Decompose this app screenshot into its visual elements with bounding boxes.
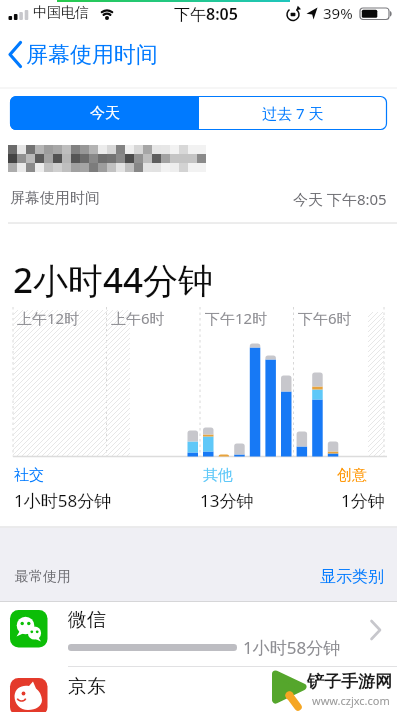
staticText: 中国电信 bbox=[33, 4, 89, 22]
staticText: 今天 下午8:05 bbox=[293, 189, 387, 209]
staticText: 今天 bbox=[90, 104, 120, 123]
staticText: 1小时58分钟 bbox=[243, 636, 341, 659]
staticText: 13分钟 bbox=[200, 489, 254, 512]
staticText: 下午12时 bbox=[205, 308, 268, 328]
staticText: 京东 bbox=[68, 675, 106, 699]
staticText: 下午8:05 bbox=[174, 3, 238, 25]
button[interactable] bbox=[0, 602, 397, 666]
staticText: 上午6时 bbox=[111, 308, 165, 328]
staticText: 过去 7 天 bbox=[262, 103, 324, 123]
staticText: 1小时58分钟 bbox=[14, 489, 112, 512]
staticText: 下午6时 bbox=[298, 308, 352, 328]
staticText: 微信 bbox=[68, 608, 106, 632]
staticText: 1分钟 bbox=[341, 489, 385, 512]
staticText: 创意 bbox=[337, 466, 367, 485]
button[interactable]: 过去 7 天 bbox=[198, 96, 387, 130]
staticText: 2小时44分钟 bbox=[13, 256, 214, 304]
staticText: 上午12时 bbox=[17, 308, 80, 328]
button[interactable]: 今天 bbox=[10, 96, 199, 130]
staticText: 社交 bbox=[14, 466, 44, 485]
staticText: 屏幕使用时间 bbox=[10, 189, 100, 208]
staticText: 39% bbox=[323, 3, 353, 23]
staticText: 最常使用 bbox=[15, 568, 71, 586]
button[interactable] bbox=[8, 36, 178, 76]
button[interactable]: 显示类别 bbox=[294, 564, 384, 590]
staticText: 屏幕使用时间 bbox=[26, 41, 158, 69]
staticText: www.czjxc.com bbox=[312, 693, 390, 708]
staticText: 其他 bbox=[203, 466, 233, 485]
staticText: 显示类别 bbox=[320, 567, 384, 587]
staticText: 铲子手游网 bbox=[307, 671, 392, 692]
button[interactable] bbox=[0, 667, 397, 712]
